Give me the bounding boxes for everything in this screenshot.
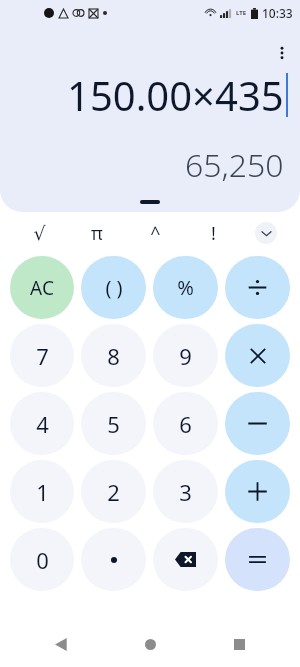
button[interactable]: 9	[153, 324, 218, 387]
staticText: 10:33	[262, 5, 293, 21]
staticText: 3	[179, 477, 192, 507]
button[interactable]: ^	[126, 213, 184, 253]
staticText: AC	[30, 275, 54, 301]
staticText: LTE	[236, 9, 247, 17]
button[interactable]: 4	[10, 392, 74, 455]
staticText: 8	[107, 341, 120, 371]
staticText: 2	[107, 477, 120, 507]
button[interactable]: More options	[267, 38, 297, 68]
button[interactable]: Multiply	[225, 324, 290, 387]
button[interactable]: Expand functions	[255, 222, 277, 244]
button[interactable]: 6	[153, 392, 218, 455]
staticText: 1	[36, 477, 49, 507]
button[interactable]: 7	[10, 324, 74, 387]
button[interactable]: 3	[153, 460, 218, 523]
button[interactable]: Minus	[225, 392, 290, 455]
button[interactable]: ( )	[81, 256, 146, 319]
button[interactable]: Decimal point	[81, 528, 146, 591]
staticText: ( )	[105, 274, 123, 301]
staticText: ^	[150, 221, 161, 246]
button[interactable]: √	[10, 213, 68, 253]
button[interactable]: !	[184, 213, 242, 253]
button[interactable]: %	[153, 256, 218, 319]
staticText: π	[91, 221, 103, 246]
button[interactable]: 2	[81, 460, 146, 523]
staticText: 0	[36, 545, 49, 575]
staticText: !	[211, 221, 216, 246]
staticText: %	[177, 274, 194, 301]
button[interactable]: 1	[10, 460, 74, 523]
button[interactable]: 8	[81, 324, 146, 387]
staticText: 65,250	[185, 143, 284, 187]
staticText: 4	[36, 409, 49, 439]
button[interactable]: Plus	[225, 460, 290, 523]
staticText: 9	[179, 341, 192, 371]
button[interactable]: π	[68, 213, 126, 253]
staticText: √	[33, 222, 46, 244]
staticText: 5	[107, 409, 120, 439]
button[interactable]: 5	[81, 392, 146, 455]
button[interactable]: Delete	[153, 528, 218, 591]
button[interactable]: Recent apps	[222, 627, 256, 661]
staticText: 150.00×435	[67, 68, 284, 122]
button[interactable]: Divide	[225, 256, 290, 319]
button[interactable]: Home	[133, 627, 167, 661]
button[interactable]: Equals	[225, 528, 290, 591]
button[interactable]: Back	[44, 627, 78, 661]
button[interactable]: 0	[10, 528, 74, 591]
staticText: 7	[36, 341, 49, 371]
button[interactable]: AC	[10, 256, 74, 319]
staticText: 6	[179, 409, 192, 439]
